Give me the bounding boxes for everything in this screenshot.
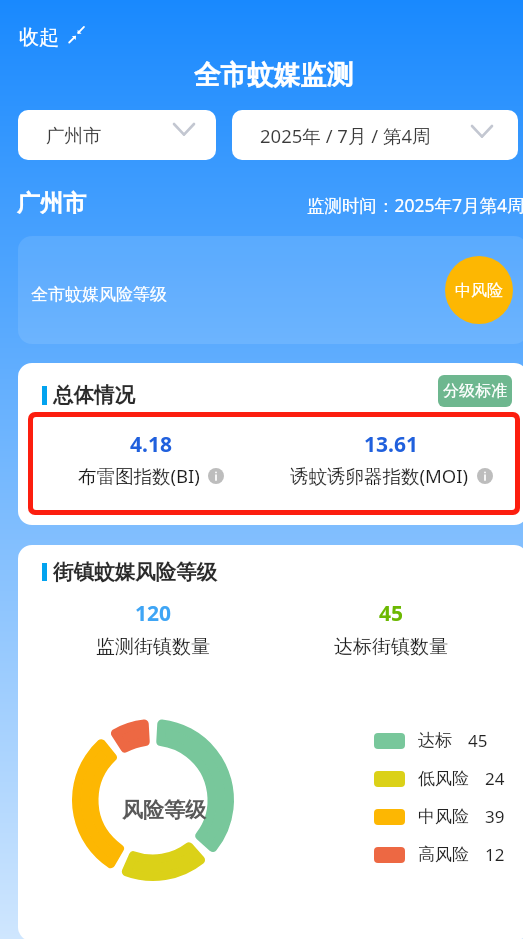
- staticText: 中风险: [418, 806, 469, 827]
- staticText: 分级标准: [443, 381, 507, 401]
- other: Collapse: [68, 26, 85, 43]
- staticText: 广州市: [46, 124, 102, 147]
- staticText: 高风险: [418, 844, 469, 865]
- staticText: 45: [379, 599, 404, 628]
- staticText: 广州市: [17, 189, 86, 218]
- staticText: 4.18: [130, 430, 172, 459]
- staticText: 诱蚊诱卵器指数(MOI): [290, 463, 469, 488]
- staticText: 收起: [19, 25, 59, 50]
- staticText: 45: [468, 729, 488, 752]
- staticText: 39: [485, 805, 505, 828]
- staticText: 2025年 / 7月 / 第4周: [260, 123, 431, 148]
- button[interactable]: 2025年 / 7月 / 第4周: [232, 110, 518, 160]
- staticText: 布雷图指数(BI): [78, 463, 200, 488]
- button[interactable]: 广州市: [18, 110, 216, 160]
- staticText: 全市蚊媒监测: [194, 58, 353, 91]
- staticText: 街镇蚊媒风险等级: [53, 559, 217, 585]
- staticText: 总体情况: [53, 382, 135, 408]
- button[interactable]: 全市蚊媒风险等级: [18, 236, 523, 344]
- staticText: 120: [135, 599, 172, 628]
- staticText: 中风险: [455, 281, 503, 301]
- button[interactable]: 分级标准: [438, 375, 512, 407]
- staticText: 达标街镇数量: [334, 635, 448, 659]
- staticText: 12: [485, 843, 505, 866]
- staticText: 全市蚊媒风险等级: [31, 284, 167, 305]
- staticText: 监测街镇数量: [96, 635, 210, 659]
- staticText: 24: [485, 767, 505, 790]
- staticText: 低风险: [418, 768, 469, 789]
- staticText: 监测时间：2025年7月第4周: [307, 193, 523, 217]
- staticText: 13.61: [364, 430, 418, 459]
- staticText: 风险等级: [122, 797, 206, 823]
- staticText: 达标: [418, 730, 452, 751]
- button[interactable]: 收起: [14, 20, 90, 50]
